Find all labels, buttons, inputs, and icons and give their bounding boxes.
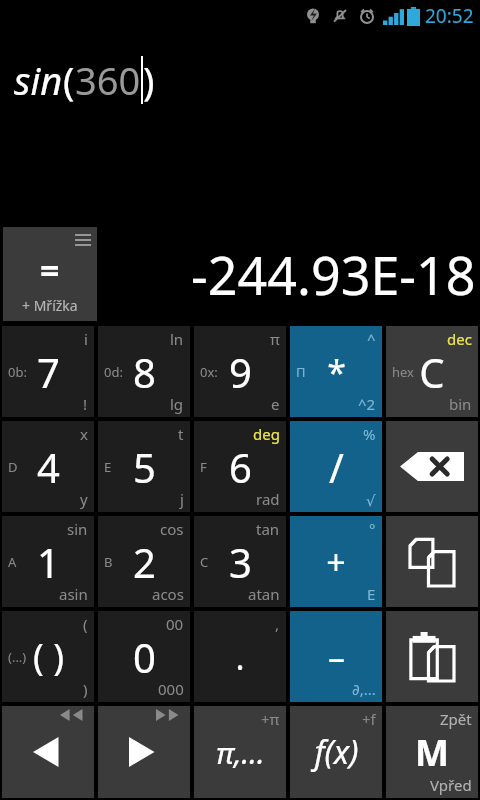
button[interactable]: Paste <box>386 611 478 702</box>
staticText: (...) <box>8 648 27 666</box>
staticText: 9 <box>229 345 252 399</box>
staticText: 360 <box>75 54 141 106</box>
staticText: ln <box>170 329 184 349</box>
staticText: √ <box>366 492 376 509</box>
staticText: ^2 <box>358 394 376 414</box>
button[interactable]: Zpět <box>386 706 478 798</box>
staticText: + Mřížka <box>22 296 78 315</box>
staticText: % <box>363 424 376 444</box>
staticText: -244.93E-18 <box>191 239 476 310</box>
staticText: 2 <box>133 535 156 589</box>
staticText: e <box>271 394 280 414</box>
staticText: D <box>8 458 18 476</box>
staticText: cos <box>160 519 184 539</box>
staticText: F <box>200 458 207 476</box>
staticText: +f <box>362 709 376 729</box>
staticText: π,... <box>216 732 265 773</box>
staticText: asin <box>59 584 88 604</box>
staticText: ( <box>63 54 75 106</box>
staticText: acos <box>152 584 184 604</box>
button[interactable]: tan <box>194 516 286 607</box>
staticText: 00 <box>166 614 184 634</box>
staticText: C <box>419 345 445 399</box>
button[interactable]: = <box>3 227 97 321</box>
staticText: lg <box>170 394 184 414</box>
button[interactable]: Copy <box>386 516 478 607</box>
staticText: sin <box>67 519 88 539</box>
staticText: atan <box>248 584 280 604</box>
button[interactable]: dec <box>386 326 478 417</box>
staticText: 4 <box>37 440 60 494</box>
button[interactable]: ln <box>98 326 190 417</box>
staticText: 000 <box>158 679 184 699</box>
button[interactable]: i <box>2 326 94 417</box>
button[interactable]: +f <box>290 706 382 798</box>
staticText: bin <box>449 394 472 414</box>
staticText: ( ) <box>33 632 64 681</box>
staticText: rad <box>256 489 280 509</box>
button[interactable]: 00 <box>98 611 190 702</box>
staticText: ) <box>83 679 88 699</box>
staticText: dec <box>447 329 472 349</box>
staticText: Vpřed <box>430 775 472 795</box>
staticText: E <box>104 458 112 476</box>
staticText: +π <box>261 709 280 729</box>
staticText: π <box>270 329 280 349</box>
staticText: . <box>235 634 245 680</box>
staticText: t <box>178 424 184 444</box>
staticText: ° <box>369 519 376 539</box>
staticText: x <box>80 424 88 444</box>
staticText: i <box>84 329 88 349</box>
staticText: – <box>328 634 345 680</box>
staticText: 1 <box>37 535 60 589</box>
staticText: ∂,... <box>352 679 376 699</box>
staticText: 0b: <box>8 363 27 381</box>
staticText: 20:52 <box>425 3 474 29</box>
button[interactable]: π <box>194 326 286 417</box>
staticText: sin <box>14 54 63 106</box>
button[interactable]: % <box>290 421 382 512</box>
staticText: 5 <box>133 440 156 494</box>
button[interactable]: x <box>2 421 94 512</box>
button[interactable]: Left <box>2 706 94 798</box>
staticText: 0 <box>133 630 156 684</box>
button[interactable]: t <box>98 421 190 512</box>
staticText: 7 <box>37 345 60 399</box>
staticText: 0x: <box>200 363 218 381</box>
button[interactable]: ° <box>290 516 382 607</box>
button[interactable]: Right <box>98 706 190 798</box>
staticText: M <box>415 728 449 777</box>
staticText: 0d: <box>104 363 123 381</box>
staticText: 3 <box>229 535 252 589</box>
staticText: Zpět <box>440 709 472 729</box>
button[interactable]: ( <box>2 611 94 702</box>
button[interactable]: Delete <box>386 421 478 512</box>
button[interactable]: cos <box>98 516 190 607</box>
staticText: ! <box>83 394 88 414</box>
staticText: f(x) <box>314 730 359 774</box>
staticText: ( <box>83 614 88 634</box>
button[interactable]: ^ <box>290 326 382 417</box>
staticText: ) <box>143 54 155 106</box>
staticText: ^ <box>367 329 376 349</box>
staticText: = <box>40 247 60 293</box>
staticText: E <box>367 584 376 604</box>
staticText: B <box>104 553 113 571</box>
button[interactable]: +π <box>194 706 286 798</box>
staticText: 6 <box>229 440 252 494</box>
button[interactable]: ∂,... <box>290 611 382 702</box>
staticText: tan <box>256 519 280 539</box>
staticText: y <box>80 489 88 509</box>
staticText: deg <box>253 424 280 444</box>
staticText: C <box>200 553 209 571</box>
button[interactable]: deg <box>194 421 286 512</box>
staticText: * <box>327 349 346 395</box>
staticText: j <box>180 489 184 509</box>
button[interactable]: , <box>194 611 286 702</box>
staticText: 8 <box>133 345 156 399</box>
staticText: + <box>326 539 346 585</box>
button[interactable]: sin <box>2 516 94 607</box>
staticText: hex <box>392 363 414 381</box>
staticText: A <box>8 553 17 571</box>
staticText: Π <box>296 363 306 381</box>
